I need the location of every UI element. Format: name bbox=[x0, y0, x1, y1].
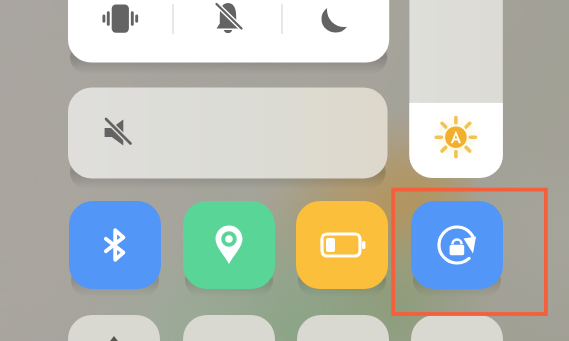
button[interactable]: Rotation lock bbox=[0, 0, 569, 341]
